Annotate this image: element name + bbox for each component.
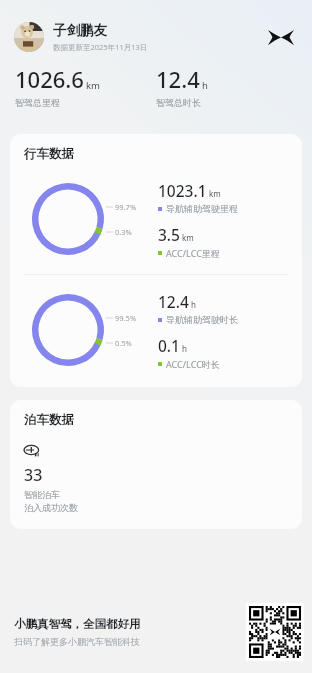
staticText: 智驾总里程 bbox=[15, 97, 60, 108]
staticText: km bbox=[209, 188, 221, 199]
staticText: 扫码了解更多小鹏汽车智能科技 bbox=[14, 636, 140, 647]
staticText: 智驾总时长 bbox=[156, 97, 201, 108]
staticText: km bbox=[182, 232, 194, 243]
staticText: 小鹏真智驾，全国都好用 bbox=[14, 617, 141, 631]
staticText: h bbox=[191, 299, 196, 310]
staticText: 智能泊车 bbox=[24, 489, 60, 500]
staticText: 99.5% bbox=[115, 313, 137, 323]
staticText: ACC/LCC里程 bbox=[166, 247, 220, 259]
button[interactable] bbox=[14, 22, 44, 52]
staticText: 33 bbox=[24, 464, 43, 486]
staticText: 1026.6 bbox=[15, 64, 84, 94]
button[interactable]: QR code bbox=[246, 603, 304, 661]
staticText: 导航辅助驾驶里程 bbox=[166, 203, 238, 214]
staticText: h bbox=[182, 343, 187, 354]
staticText: 12.4 bbox=[156, 64, 200, 94]
staticText: 1023.1 bbox=[158, 180, 207, 201]
staticText: 泊入成功次数 bbox=[24, 502, 78, 513]
staticText: 泊车数据 bbox=[24, 412, 74, 428]
staticText: 子剑鹏友 bbox=[53, 22, 107, 39]
staticText: 12.4 bbox=[158, 291, 189, 312]
staticText: 0.3% bbox=[115, 227, 132, 237]
staticText: 数据更新至2025年11月13日 bbox=[53, 42, 148, 52]
button[interactable]: XPeng logo bbox=[264, 20, 298, 54]
staticText: ACC/LCC时长 bbox=[166, 358, 220, 370]
staticText: 0.5% bbox=[115, 338, 132, 348]
staticText: 3.5 bbox=[158, 224, 180, 245]
button[interactable]: 泊车数据 bbox=[10, 400, 302, 529]
staticText: h bbox=[202, 79, 208, 92]
staticText: 行车数据 bbox=[24, 146, 74, 162]
button[interactable]: 行车数据 bbox=[10, 134, 302, 387]
staticText: km bbox=[86, 79, 100, 92]
staticText: 导航辅助驾驶时长 bbox=[166, 314, 238, 325]
staticText: 99.7% bbox=[115, 202, 137, 212]
staticText: 0.1 bbox=[158, 335, 180, 356]
